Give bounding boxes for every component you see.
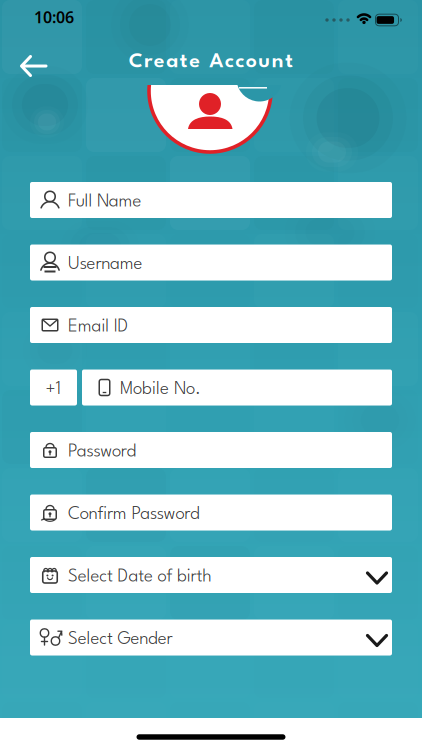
button[interactable]: +1 — [30, 369, 77, 405]
staticText: Username — [68, 256, 143, 273]
button[interactable]: Mobile No. — [82, 369, 392, 405]
button[interactable]: Add profile photo — [130, 85, 290, 158]
button[interactable]: Password — [30, 432, 392, 468]
button[interactable]: Full Name — [30, 182, 392, 218]
button[interactable]: Select Date of birth — [30, 557, 392, 593]
button[interactable]: Confirm Password — [30, 494, 392, 530]
staticText: Confirm Password — [68, 506, 200, 523]
button[interactable]: Back — [20, 55, 46, 77]
staticText: Select Gender — [68, 631, 173, 648]
button[interactable]: Email ID — [30, 307, 392, 343]
staticText: Password — [68, 443, 137, 461]
staticText: +1 — [45, 381, 61, 398]
staticText: Email ID — [68, 318, 129, 336]
button[interactable]: Select Gender — [30, 619, 392, 655]
staticText: Full Name — [68, 193, 141, 211]
button[interactable]: Username — [30, 244, 392, 280]
staticText: Select Date of birth — [68, 568, 211, 586]
staticText: 10:06 — [34, 6, 74, 28]
staticText: Create Account — [129, 52, 293, 72]
staticText: Mobile No. — [120, 381, 201, 398]
